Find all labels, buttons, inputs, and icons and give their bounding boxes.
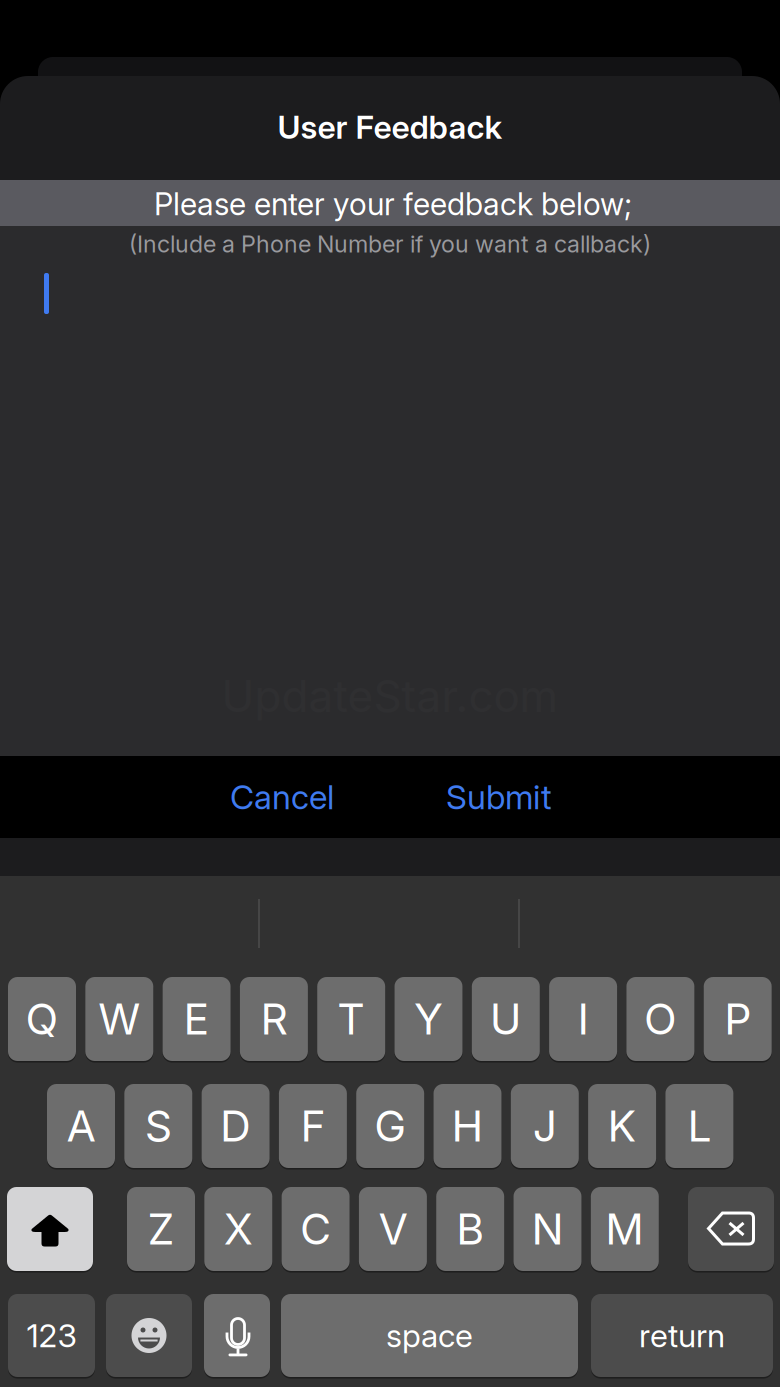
- button[interactable]: 123: [8, 1294, 95, 1377]
- staticText: Q: [25, 993, 58, 1045]
- button[interactable]: B: [436, 1187, 504, 1271]
- staticText: D: [220, 1100, 251, 1152]
- button[interactable]: E: [163, 977, 231, 1061]
- staticText: F: [300, 1100, 325, 1152]
- staticText: X: [224, 1203, 253, 1255]
- staticText: N: [531, 1203, 563, 1255]
- button[interactable]: L: [665, 1084, 733, 1168]
- button[interactable]: Emoji: [106, 1294, 192, 1377]
- staticText: B: [456, 1203, 484, 1255]
- staticText: M: [605, 1203, 644, 1255]
- button[interactable]: T: [317, 977, 385, 1061]
- staticText: A: [66, 1100, 95, 1152]
- staticText: S: [145, 1100, 172, 1152]
- button[interactable]: F: [279, 1084, 347, 1168]
- staticText: H: [451, 1100, 483, 1152]
- staticText: Please enter your feedback below;: [154, 185, 632, 222]
- button[interactable]: J: [511, 1084, 579, 1168]
- staticText: O: [644, 993, 677, 1045]
- staticText: Cancel: [230, 777, 334, 817]
- button[interactable]: X: [204, 1187, 272, 1271]
- staticText: I: [578, 993, 589, 1045]
- button[interactable]: O: [626, 977, 694, 1061]
- button[interactable]: P: [704, 977, 772, 1061]
- button[interactable]: Shift: [7, 1187, 93, 1271]
- button[interactable]: N: [513, 1187, 581, 1271]
- staticText: Submit: [446, 777, 552, 817]
- staticText: R: [260, 993, 287, 1045]
- staticText: return: [639, 1316, 725, 1355]
- button[interactable]: K: [588, 1084, 656, 1168]
- button[interactable]: D: [202, 1084, 270, 1168]
- button[interactable]: W: [85, 977, 153, 1061]
- staticText: L: [687, 1100, 711, 1152]
- staticText: U: [490, 993, 522, 1045]
- button[interactable]: Delete: [688, 1187, 774, 1271]
- button[interactable]: S: [124, 1084, 192, 1168]
- button[interactable]: V: [359, 1187, 427, 1271]
- button[interactable]: C: [282, 1187, 350, 1271]
- button[interactable]: G: [356, 1084, 424, 1168]
- staticText: C: [300, 1203, 331, 1255]
- staticText: P: [724, 993, 751, 1045]
- button[interactable]: Y: [394, 977, 462, 1061]
- staticText: Z: [147, 1203, 174, 1255]
- staticText: G: [374, 1100, 406, 1152]
- staticText: 123: [26, 1316, 76, 1355]
- button[interactable]: space: [281, 1294, 578, 1377]
- button[interactable]: Dictate: [204, 1294, 270, 1377]
- button[interactable]: I: [549, 977, 617, 1061]
- button[interactable]: R: [240, 977, 308, 1061]
- staticText: (Include a Phone Number if you want a ca…: [129, 230, 651, 258]
- staticText: J: [533, 1100, 557, 1152]
- staticText: E: [184, 993, 210, 1045]
- button[interactable]: H: [433, 1084, 501, 1168]
- button[interactable]: U: [472, 977, 540, 1061]
- button[interactable]: M: [591, 1187, 659, 1271]
- button[interactable]: A: [47, 1084, 115, 1168]
- staticText: space: [386, 1316, 473, 1355]
- button[interactable]: Submit: [399, 756, 599, 838]
- button[interactable]: Z: [127, 1187, 195, 1271]
- staticText: V: [378, 1203, 407, 1255]
- staticText: Y: [414, 993, 443, 1045]
- button[interactable]: Q: [8, 977, 76, 1061]
- staticText: W: [98, 993, 140, 1045]
- staticText: User Feedback: [277, 108, 502, 146]
- staticText: K: [608, 1100, 637, 1152]
- staticText: T: [337, 993, 365, 1045]
- button[interactable]: Cancel: [182, 756, 382, 838]
- button[interactable]: return: [591, 1294, 773, 1377]
